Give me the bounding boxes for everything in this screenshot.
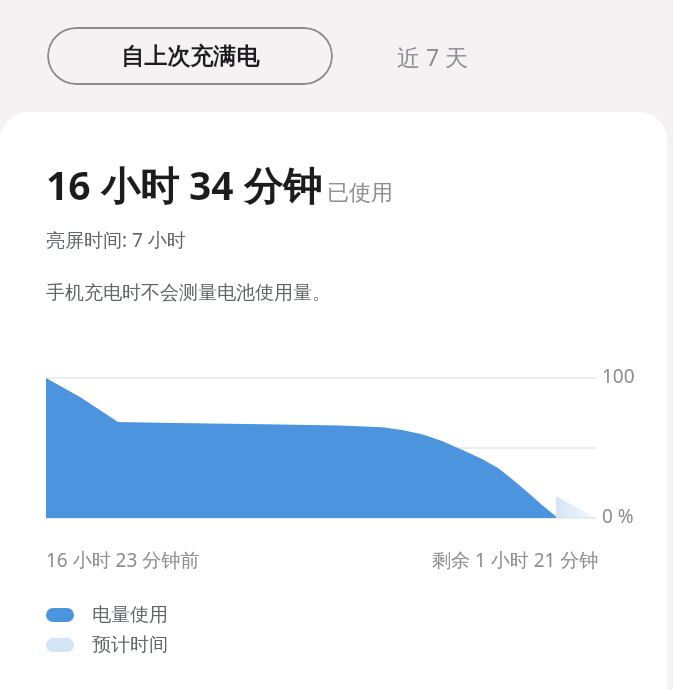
staticText: 手机充电时不会测量电池使用量。 (46, 281, 331, 305)
staticText: 近 7 天 (397, 41, 469, 72)
button[interactable]: 自上次充满电 (47, 27, 333, 85)
staticText: 已使用 (327, 179, 393, 207)
staticText: 16 小时 34 分钟 (46, 158, 322, 211)
staticText: 16 小时 23 分钟前 (46, 547, 200, 573)
button[interactable]: 近 7 天 (333, 27, 533, 85)
staticText: 100 (602, 363, 635, 389)
button[interactable]: 电量使用 (46, 603, 168, 627)
staticText: 剩余 1 小时 21 分钟 (432, 547, 599, 573)
staticText: 自上次充满电 (121, 42, 259, 71)
staticText: 电量使用 (92, 603, 168, 627)
staticText: 预计时间 (92, 633, 168, 657)
button[interactable]: 预计时间 (46, 633, 168, 657)
staticText: 亮屏时间: 7 小时 (46, 227, 186, 253)
staticText: 0 % (602, 503, 634, 529)
